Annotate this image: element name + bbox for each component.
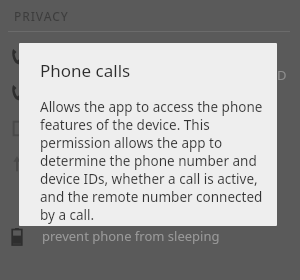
staticText: view Wi-Fi connections — [42, 191, 180, 209]
button[interactable]: read call log — [0, 74, 300, 110]
staticText: Phone calls — [40, 59, 131, 82]
staticText: Allows the app to access the phone featu… — [40, 98, 263, 224]
button[interactable]: modify phone state — [0, 110, 300, 146]
staticText: PRIVACY — [14, 8, 69, 24]
button[interactable]: full network access — [0, 146, 300, 182]
button[interactable]: directly call phone numbers — [0, 38, 300, 74]
staticText: D — [277, 66, 287, 84]
button[interactable]: Phone calls — [19, 43, 277, 226]
staticText: prevent phone from sleeping — [42, 227, 220, 245]
staticText: full network access — [42, 155, 158, 173]
button[interactable]: view Wi-Fi connections — [0, 182, 300, 218]
staticText: modify phone state — [42, 119, 161, 137]
button[interactable]: prevent phone from sleeping — [0, 218, 300, 254]
